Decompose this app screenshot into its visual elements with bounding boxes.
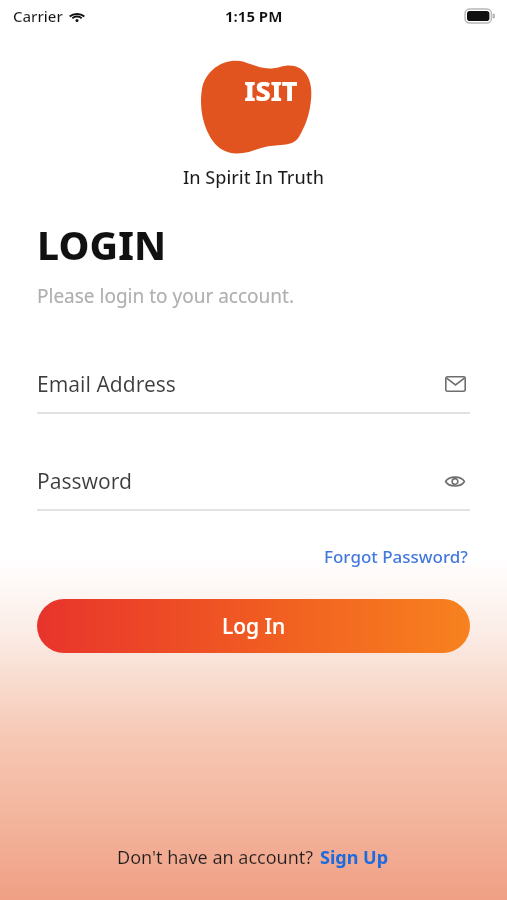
button[interactable]: Email <box>440 369 470 399</box>
button[interactable]: Email Address <box>37 367 470 401</box>
staticText: LOGIN <box>37 218 167 271</box>
staticText: Please login to your account. <box>37 283 295 309</box>
staticText: In Spirit In Truth <box>183 165 324 190</box>
staticText: Email Address <box>37 370 176 399</box>
staticText: Don't have an account? <box>117 845 318 870</box>
button[interactable]: Show password <box>440 466 470 496</box>
button[interactable]: Sign Up <box>318 842 391 873</box>
staticText: Log In <box>222 612 286 641</box>
button[interactable]: Password <box>37 464 470 498</box>
button[interactable]: Log In <box>37 599 470 653</box>
staticText: Sign Up <box>320 845 389 870</box>
staticText: ISIT <box>244 72 298 109</box>
staticText: Password <box>37 467 132 496</box>
staticText: 1:15 PM <box>225 6 283 26</box>
button[interactable]: Forgot Password? <box>322 541 470 572</box>
staticText: Forgot Password? <box>324 545 468 568</box>
staticText: Carrier <box>13 6 63 26</box>
